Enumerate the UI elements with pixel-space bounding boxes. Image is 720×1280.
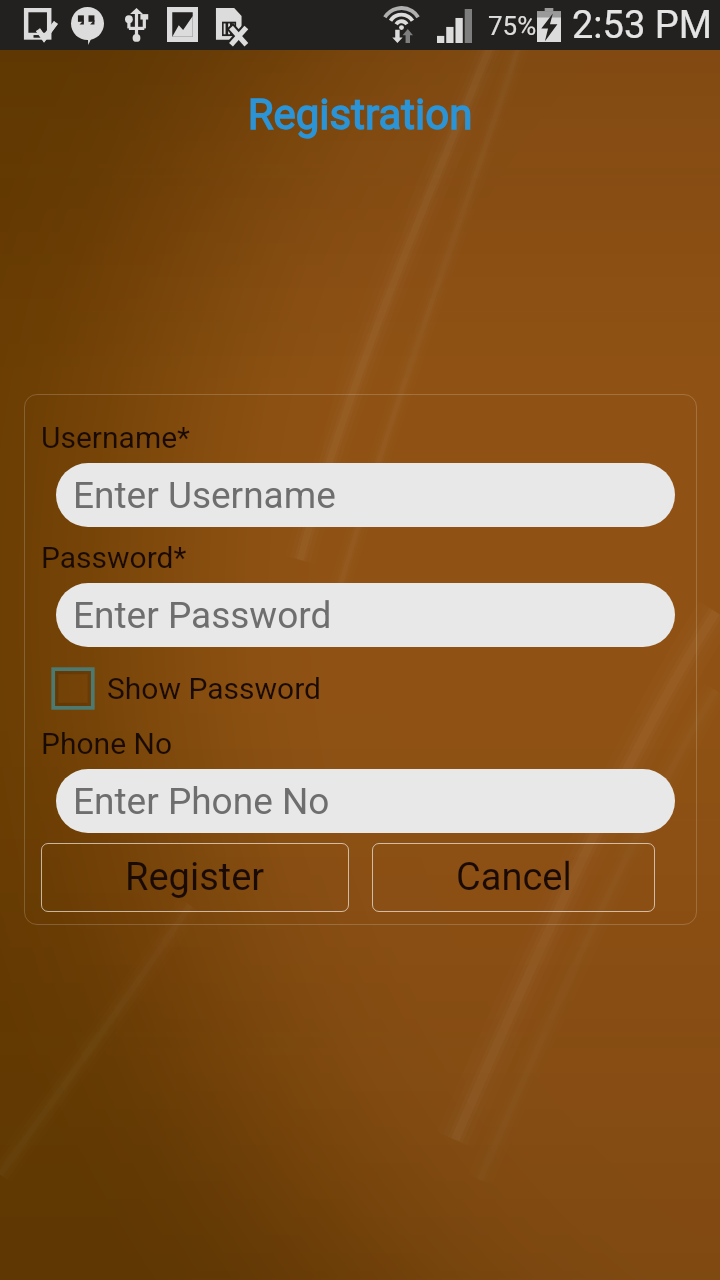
staticText: Enter Username [73, 474, 336, 517]
staticText: Registration [0, 90, 720, 139]
other: Mobile signal [437, 9, 472, 43]
staticText: Register [125, 855, 265, 900]
button[interactable]: Show Password [51, 667, 321, 710]
staticText: Password* [41, 540, 187, 575]
staticText: Show Password [107, 671, 321, 706]
other: Wi-Fi [383, 8, 420, 43]
staticText: Enter Phone No [73, 780, 330, 823]
button[interactable]: Register [41, 843, 349, 912]
staticText: Phone No [41, 726, 172, 761]
other: Hangouts [71, 7, 104, 45]
button[interactable]: Cancel [372, 843, 655, 912]
staticText: Cancel [456, 855, 572, 900]
staticText: Enter Password [73, 594, 332, 637]
other: Device check [22, 8, 54, 41]
button[interactable]: Enter Phone No [56, 769, 675, 833]
button[interactable]: Enter Password [56, 583, 675, 647]
button[interactable]: Enter Username [56, 463, 675, 527]
other: Battery charging [537, 8, 561, 42]
staticText: 75% [488, 11, 537, 41]
staticText: 2:53 PM [572, 3, 712, 48]
other: No SIM card [215, 8, 247, 44]
staticText: Username* [41, 420, 191, 455]
other: Screenshot [167, 7, 198, 42]
other: USB [125, 8, 148, 42]
